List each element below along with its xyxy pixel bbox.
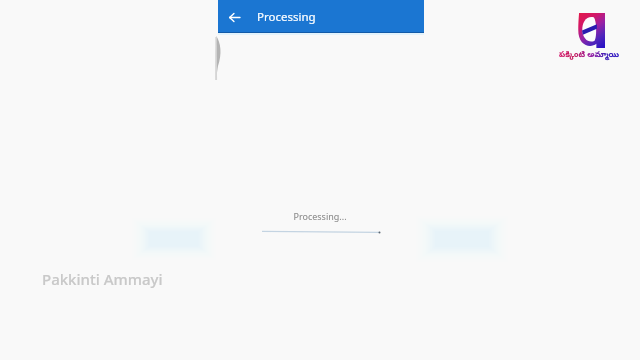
button[interactable]: Back [221, 4, 247, 30]
staticText: పక్కింటి అమ్మాయి [559, 48, 620, 60]
staticText: Pakkinti Ammayi [42, 269, 163, 289]
staticText: Processing... [293, 210, 347, 222]
staticText: Processing [257, 9, 316, 25]
